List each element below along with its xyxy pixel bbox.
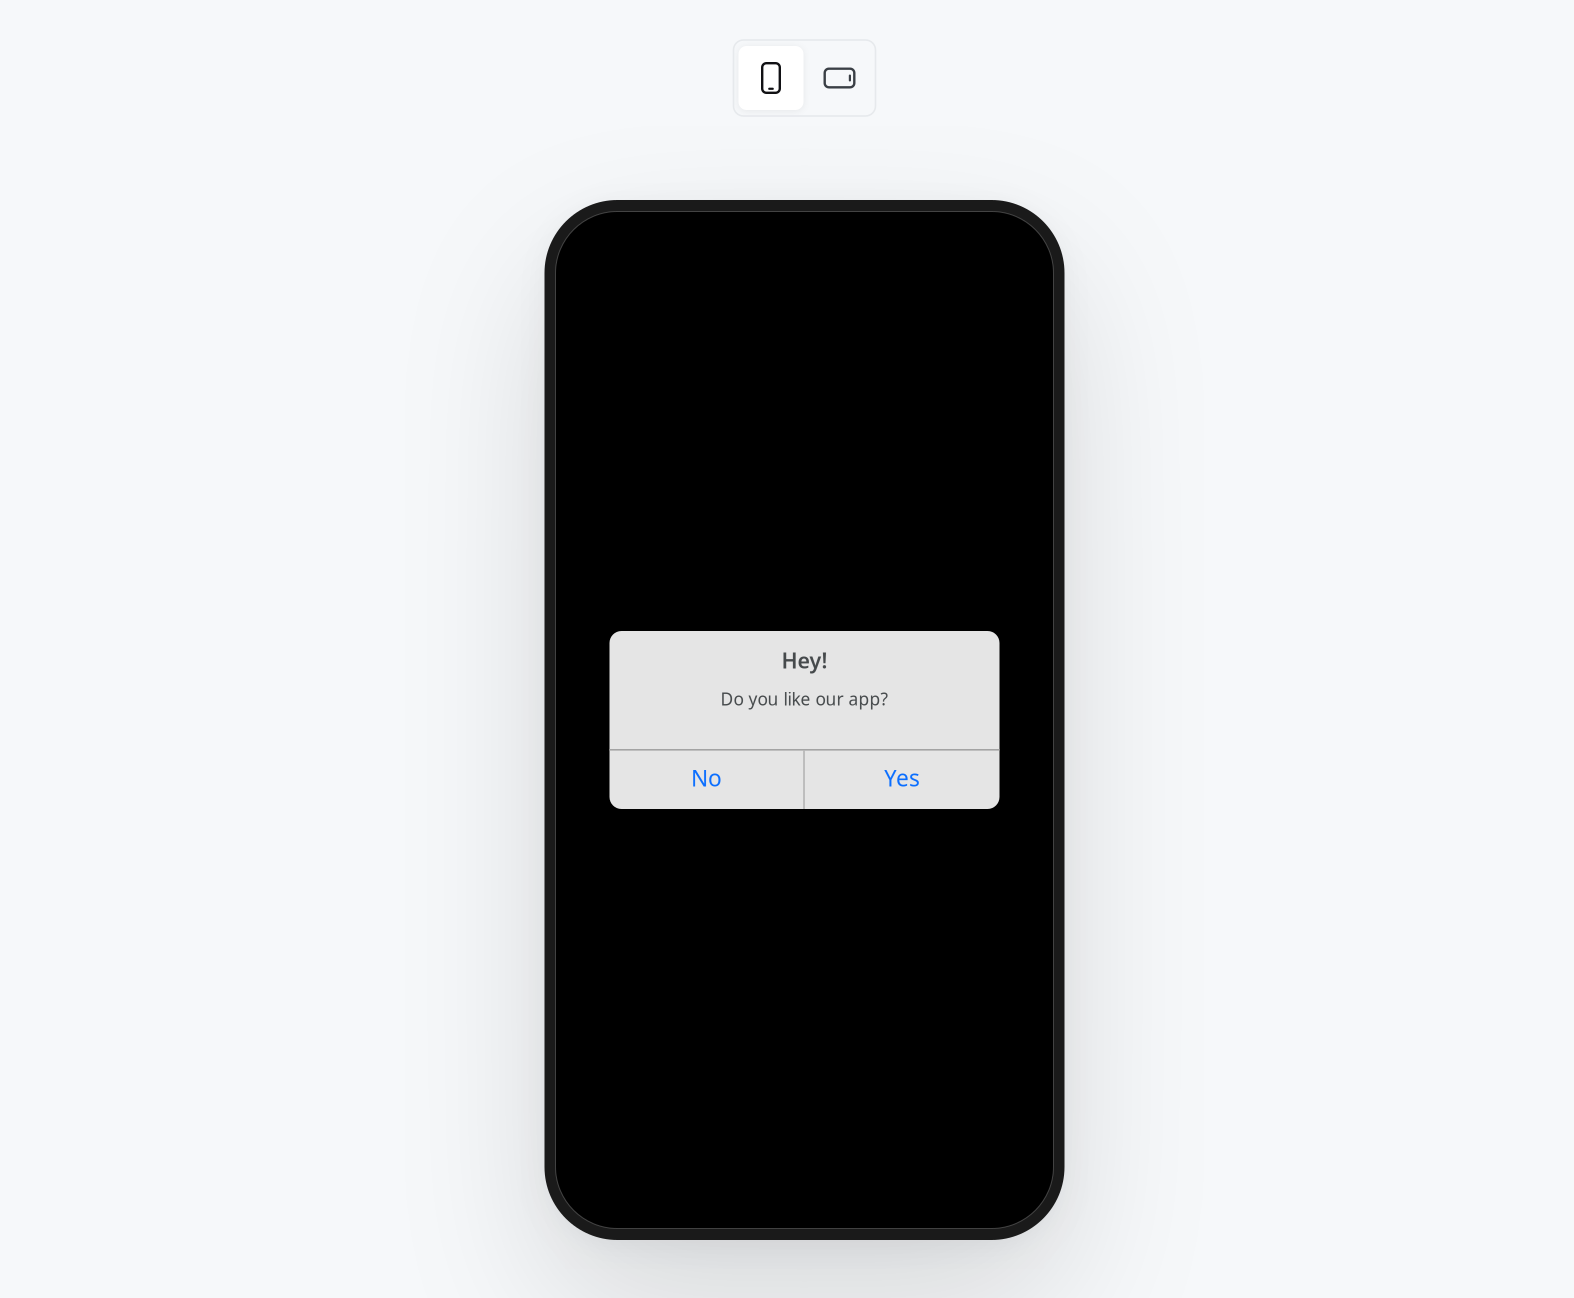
button[interactable]: Landscape orientation (803, 46, 875, 110)
staticText: Yes (884, 763, 920, 793)
staticText: Do you like our app? (720, 687, 888, 710)
button[interactable]: Yes (805, 751, 1000, 809)
staticText: No (691, 763, 722, 793)
staticText: Hey! (781, 646, 827, 674)
button[interactable]: Portrait orientation (738, 46, 803, 110)
button[interactable]: No (609, 751, 803, 809)
